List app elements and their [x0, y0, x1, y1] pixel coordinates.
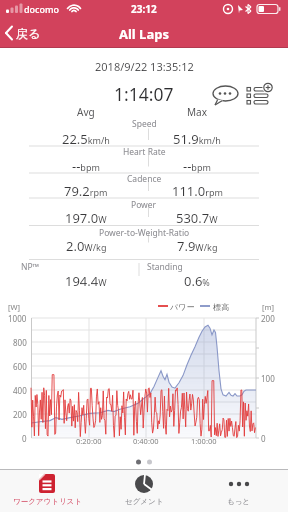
staticText: 0:40:00	[133, 436, 159, 446]
staticText: Speed	[132, 118, 157, 130]
staticText: 0.6%	[184, 272, 210, 290]
staticText: ワークアウトリスト	[13, 497, 82, 506]
staticText: 51.9km/h	[173, 130, 221, 148]
staticText: 標高	[213, 302, 229, 312]
staticText: 800	[13, 337, 27, 348]
staticText: セグメント	[125, 497, 164, 506]
staticText: Power-to-Weight-Ratio	[99, 227, 190, 239]
staticText: NP™	[21, 261, 40, 273]
staticText: Cadence	[127, 173, 162, 185]
staticText: [m]	[262, 302, 274, 312]
button[interactable]	[210, 84, 280, 108]
staticText: Max	[187, 105, 207, 119]
staticText: もっと	[227, 497, 251, 506]
staticText: 194.4W	[65, 272, 107, 290]
button[interactable]: もっと	[199, 470, 279, 512]
button[interactable]: 戻る	[4, 22, 41, 44]
staticText: Power	[131, 199, 157, 211]
staticText: 400	[13, 385, 27, 396]
staticText: 戻る	[16, 26, 41, 41]
staticText: 1:00:00	[191, 436, 217, 446]
staticText: All Laps	[119, 25, 169, 43]
staticText: docomo	[24, 3, 60, 15]
staticText: 79.2rpm	[64, 182, 108, 200]
staticText: 7.9W/kg	[177, 237, 218, 255]
staticText: Heart Rate	[123, 146, 166, 158]
staticText: Avg	[77, 105, 95, 119]
button[interactable]: ワークアウトリスト	[7, 470, 87, 512]
staticText: 200	[261, 313, 275, 324]
staticText: 0	[22, 433, 27, 444]
staticText: Standing	[147, 261, 183, 273]
staticText: --bpm	[72, 157, 100, 175]
staticText: 1000	[8, 313, 27, 324]
button[interactable]: セグメント	[104, 470, 184, 512]
staticText: 23:12	[131, 2, 157, 16]
staticText: 200	[13, 409, 27, 420]
staticText: 2018/9/22 13:35:12	[95, 59, 194, 74]
staticText: 0	[261, 433, 266, 444]
staticText: 100	[261, 373, 275, 384]
staticText: パワー	[170, 302, 195, 312]
staticText: 530.7W	[176, 209, 218, 227]
staticText: --bpm	[183, 157, 211, 175]
staticText: 2.0W/kg	[66, 237, 107, 255]
staticText: 197.0W	[65, 209, 107, 227]
staticText: 1:14:07	[114, 82, 174, 106]
staticText: 22.5km/h	[62, 130, 110, 148]
staticText: 111.0rpm	[172, 182, 223, 200]
staticText: 0:20:00	[76, 436, 102, 446]
staticText: 600	[13, 361, 27, 372]
staticText: [W]	[8, 302, 20, 312]
